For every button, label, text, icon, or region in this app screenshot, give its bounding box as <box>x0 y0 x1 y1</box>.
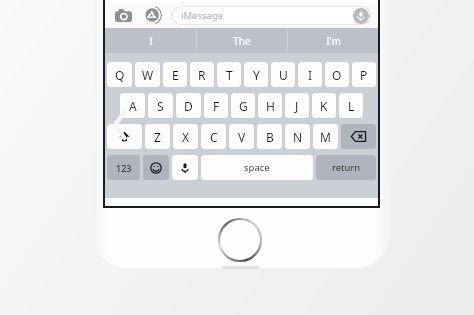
staticText: iMessage <box>181 9 224 22</box>
staticText: H <box>266 98 275 114</box>
button[interactable]: Y <box>244 62 268 87</box>
button[interactable]: B <box>257 124 282 149</box>
button[interactable]: I'm <box>288 28 378 53</box>
button[interactable]: R <box>190 62 214 87</box>
staticText: 123 <box>116 162 132 174</box>
button[interactable]: S <box>148 93 173 118</box>
staticText: Y <box>253 67 260 83</box>
button[interactable]: Q <box>107 62 132 87</box>
button[interactable]: Camera <box>112 4 134 26</box>
button[interactable]: iMessage <box>172 6 371 25</box>
button[interactable]: G <box>231 93 255 118</box>
staticText: The <box>233 34 251 48</box>
staticText: X <box>182 129 190 145</box>
button[interactable]: A <box>120 93 145 118</box>
button[interactable]: space <box>201 155 313 180</box>
staticText: Z <box>154 129 161 145</box>
button[interactable]: I <box>298 62 322 87</box>
staticText: C <box>210 129 218 145</box>
button[interactable]: Shift <box>107 124 142 149</box>
staticText: V <box>238 129 246 145</box>
button[interactable]: Z <box>145 124 170 149</box>
button[interactable]: T <box>217 62 241 87</box>
button[interactable]: M <box>313 124 338 149</box>
staticText: I <box>308 67 313 83</box>
button[interactable]: D <box>176 93 201 118</box>
staticText: B <box>266 129 274 145</box>
staticText: E <box>172 67 179 83</box>
button[interactable]: J <box>285 93 309 118</box>
button[interactable]: W <box>135 62 160 87</box>
staticText: I'm <box>326 34 341 48</box>
staticText: K <box>320 98 328 114</box>
staticText: I <box>149 34 153 48</box>
staticText: J <box>295 98 299 114</box>
button[interactable]: N <box>285 124 310 149</box>
button[interactable]: H <box>258 93 282 118</box>
button[interactable]: The <box>197 28 287 53</box>
staticText: A <box>129 98 137 114</box>
staticText: M <box>320 129 331 145</box>
staticText: U <box>279 67 288 83</box>
button[interactable]: O <box>325 62 349 87</box>
staticText: space <box>244 161 270 174</box>
staticText: W <box>142 67 154 83</box>
staticText: S <box>157 98 164 114</box>
button[interactable]: L <box>339 93 363 118</box>
staticText: D <box>184 98 193 114</box>
staticText: T <box>226 67 233 83</box>
button[interactable]: F <box>204 93 228 118</box>
staticText: R <box>198 67 206 83</box>
button[interactable]: Emoji <box>143 155 169 180</box>
button[interactable]: E <box>163 62 187 87</box>
button[interactable]: I <box>105 28 196 53</box>
staticText: G <box>239 98 248 114</box>
staticText: L <box>348 98 355 114</box>
button[interactable]: X <box>173 124 198 149</box>
button[interactable]: Backspace <box>341 124 376 149</box>
staticText: P <box>360 67 368 83</box>
button[interactable]: Dictation <box>172 155 198 180</box>
button[interactable]: C <box>201 124 226 149</box>
staticText: N <box>293 129 303 145</box>
button[interactable]: return <box>316 155 376 180</box>
button[interactable]: P <box>352 62 376 87</box>
button[interactable]: K <box>312 93 336 118</box>
button[interactable]: Numbers <box>107 155 140 180</box>
staticText: return <box>332 161 361 174</box>
button[interactable]: V <box>229 124 254 149</box>
button[interactable]: U <box>271 62 295 87</box>
button[interactable]: Home <box>216 216 264 264</box>
staticText: F <box>213 98 220 114</box>
staticText: O <box>332 67 342 83</box>
staticText: Q <box>115 67 125 83</box>
button[interactable]: App Store <box>142 4 164 26</box>
